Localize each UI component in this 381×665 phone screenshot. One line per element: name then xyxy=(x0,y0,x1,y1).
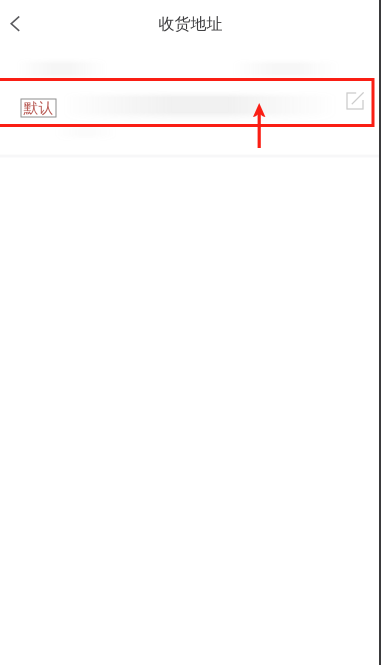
staticText: 收货地址 xyxy=(158,14,222,34)
button[interactable]: 默认 xyxy=(0,0,381,156)
button[interactable]: Back xyxy=(0,2,37,45)
button[interactable]: Edit address xyxy=(336,82,374,120)
staticText: 默认 xyxy=(23,99,53,117)
